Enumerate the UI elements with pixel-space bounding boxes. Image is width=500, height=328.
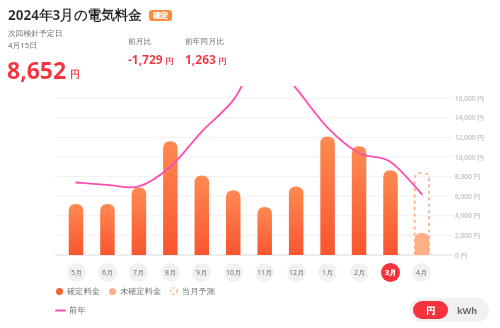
button[interactable]: 8月	[161, 263, 180, 282]
staticText: 10,000 円	[455, 153, 484, 162]
staticText: 14,000 円	[455, 113, 484, 122]
staticText: 8,000 円	[455, 172, 481, 181]
staticText: 4,000 円	[455, 211, 481, 220]
button[interactable]: 12月	[287, 263, 306, 282]
staticText: 円	[70, 68, 80, 81]
staticText: 4月	[416, 268, 428, 278]
staticText: 12,000 円	[455, 133, 484, 142]
staticText: 当月予測	[182, 286, 215, 296]
staticText: 円	[165, 56, 173, 66]
staticText: 7月	[133, 268, 145, 278]
staticText: 2月	[354, 268, 366, 278]
button[interactable]: 3月	[381, 263, 400, 282]
staticText: 16,000 円	[455, 94, 484, 103]
staticText: 9月	[196, 268, 208, 278]
staticText: 8,652	[7, 54, 67, 85]
button[interactable]: Yen	[413, 301, 448, 319]
button[interactable]: 6月	[98, 263, 117, 282]
staticText: 次回検針予定日	[8, 28, 63, 38]
button[interactable]: 4月	[412, 263, 431, 282]
staticText: 未確定料金	[120, 286, 161, 296]
staticText: 6,000 円	[455, 192, 481, 201]
staticText: 1,263	[185, 51, 216, 67]
staticText: 2,000 円	[455, 231, 481, 240]
button[interactable]: 1月	[318, 263, 337, 282]
staticText: 1月	[322, 268, 334, 278]
staticText: 5月	[71, 268, 83, 278]
staticText: 円	[426, 305, 435, 316]
button[interactable]: 5月	[67, 263, 86, 282]
staticText: 12月	[289, 268, 305, 278]
staticText: -1,729	[128, 51, 163, 67]
staticText: 円	[218, 56, 226, 66]
staticText: 確定料金	[67, 286, 100, 296]
staticText: 11月	[257, 268, 273, 278]
staticText: 10月	[226, 268, 242, 278]
staticText: 8月	[165, 268, 177, 278]
button[interactable]: 2月	[350, 263, 369, 282]
staticText: kWh	[457, 304, 478, 316]
button[interactable]: 7月	[129, 263, 148, 282]
button[interactable]: kWh	[448, 301, 486, 319]
button[interactable]: 確定	[149, 10, 172, 21]
staticText: 前年同月比	[185, 36, 224, 46]
staticText: 4月15日	[8, 40, 37, 51]
button[interactable]: 9月	[192, 263, 211, 282]
staticText: 6月	[102, 268, 114, 278]
staticText: 3月	[385, 268, 397, 278]
staticText: 前月比	[128, 36, 152, 46]
staticText: 確定	[153, 11, 168, 20]
button[interactable]: 11月	[255, 263, 274, 282]
staticText: 2024年3月の電気料金	[8, 6, 142, 24]
staticText: 0 円	[455, 251, 468, 260]
staticText: 前年	[69, 305, 86, 315]
button[interactable]: 10月	[224, 263, 243, 282]
